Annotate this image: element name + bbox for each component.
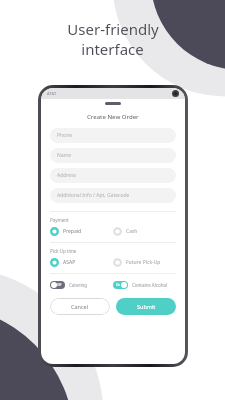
staticText: User-friendly — [67, 19, 159, 39]
staticText: Payment — [50, 217, 69, 223]
staticText: Catering — [69, 282, 88, 288]
button[interactable]: Name — [50, 148, 176, 163]
button[interactable]: Prepaid — [50, 227, 113, 236]
staticText: Submit — [137, 303, 156, 310]
other: Front camera — [172, 90, 179, 97]
button[interactable]: Cancel — [50, 298, 110, 315]
button[interactable]: ASAP — [50, 258, 113, 267]
staticText: Pick Up time — [50, 248, 77, 254]
staticText: Off — [57, 283, 62, 287]
button[interactable]: Off — [50, 281, 113, 289]
staticText: interface — [81, 39, 144, 59]
staticText: Contains Alcohol — [132, 282, 168, 288]
staticText: Create New Order — [87, 113, 139, 121]
staticText: Additional Info / Apt, Gatecode — [57, 192, 130, 199]
button[interactable]: Address — [50, 168, 176, 183]
staticText: Cancel — [71, 303, 89, 310]
staticText: Address — [57, 172, 76, 179]
staticText: AT&T — [47, 91, 57, 96]
button[interactable]: On — [113, 281, 176, 289]
staticText: Phone — [57, 132, 73, 139]
button[interactable]: Submit — [116, 298, 176, 315]
button[interactable]: Additional Info / Apt, Gatecode — [50, 188, 176, 203]
button[interactable]: Cash — [113, 227, 176, 236]
staticText: Cash — [126, 228, 138, 235]
staticText: Future Pick-Up — [126, 259, 161, 266]
button[interactable]: Future Pick-Up — [113, 258, 176, 267]
staticText: Prepaid — [63, 228, 82, 235]
staticText: Name — [57, 152, 72, 159]
staticText: ASAP — [63, 259, 76, 266]
staticText: On — [116, 283, 121, 287]
button[interactable]: Phone — [50, 128, 176, 143]
